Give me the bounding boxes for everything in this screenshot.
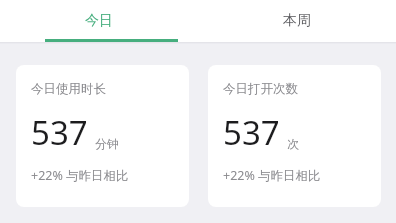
button[interactable]: 今日打开次数 bbox=[208, 65, 381, 207]
button[interactable]: 本周 bbox=[198, 0, 396, 42]
staticText: 今日打开次数 bbox=[223, 81, 298, 97]
staticText: 537 bbox=[223, 110, 280, 155]
staticText: 今日 bbox=[85, 12, 113, 30]
staticText: 本周 bbox=[283, 12, 311, 30]
staticText: 分钟 bbox=[95, 136, 119, 151]
staticText: 537 bbox=[31, 110, 88, 155]
staticText: +22% 与昨日相比 bbox=[31, 167, 129, 184]
button[interactable]: 今日 bbox=[0, 0, 198, 42]
button[interactable]: 今日使用时长 bbox=[16, 65, 189, 207]
staticText: 次 bbox=[287, 136, 299, 151]
staticText: 今日使用时长 bbox=[31, 81, 106, 97]
staticText: +22% 与昨日相比 bbox=[223, 167, 321, 184]
